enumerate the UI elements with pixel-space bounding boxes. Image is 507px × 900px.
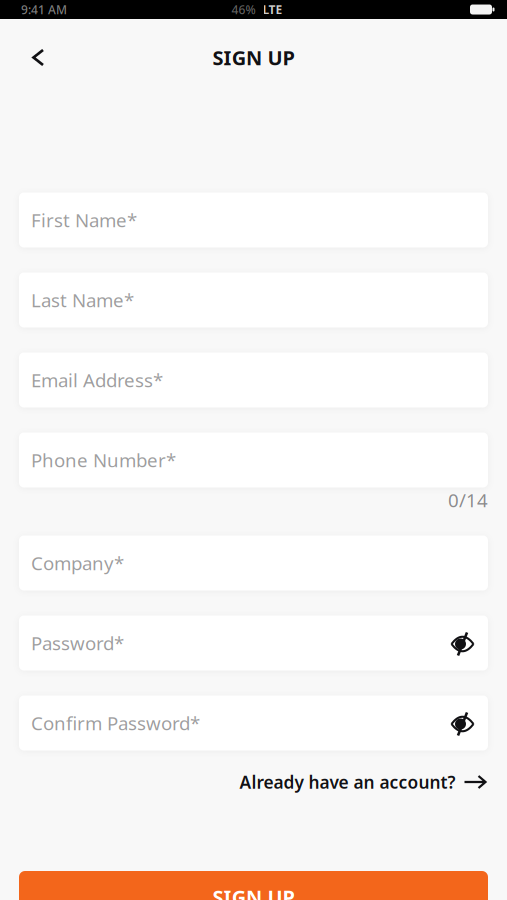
button[interactable]	[28, 47, 48, 67]
staticText: SIGN UP	[212, 44, 295, 71]
button[interactable]: Phone Number*	[19, 432, 488, 487]
button[interactable]: Company*	[19, 535, 488, 590]
staticText: 0/14	[448, 488, 488, 512]
button[interactable]: SIGN UP	[19, 871, 488, 900]
staticText: Already have an account?	[239, 770, 455, 793]
button[interactable]: First Name*	[19, 192, 488, 247]
button[interactable]: Confirm Password*	[19, 695, 488, 750]
button[interactable]	[450, 634, 474, 654]
button[interactable]	[450, 714, 474, 734]
staticText: Email Address*	[31, 368, 163, 392]
staticText: First Name*	[31, 208, 137, 232]
staticText: Company*	[31, 551, 124, 575]
staticText: 46%	[231, 1, 255, 17]
button[interactable]: Password*	[19, 615, 488, 670]
staticText: Phone Number*	[31, 448, 176, 472]
staticText: Password*	[31, 631, 124, 655]
staticText: Confirm Password*	[31, 711, 200, 735]
button[interactable]: Last Name*	[19, 272, 488, 327]
staticText: SIGN UP	[212, 884, 295, 900]
button[interactable]: Already have an account?	[239, 770, 486, 793]
staticText: Last Name*	[31, 288, 134, 312]
button[interactable]: Email Address*	[19, 352, 488, 407]
staticText: 9:41 AM	[21, 1, 67, 17]
staticText: LTE	[262, 1, 282, 17]
